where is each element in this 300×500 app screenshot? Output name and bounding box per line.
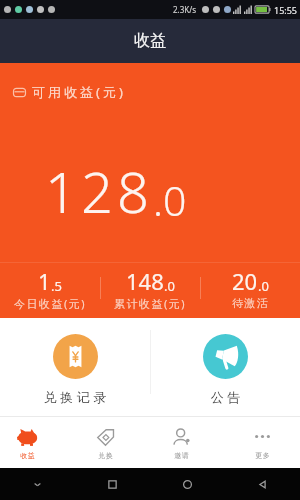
button[interactable]: 收益 [0, 417, 54, 468]
other: Home [181, 478, 194, 491]
other: Back [256, 478, 269, 491]
staticText: 可用收益(元) [32, 83, 126, 101]
button[interactable]: 20 [201, 263, 300, 318]
staticText: 2.3K/s [173, 4, 197, 15]
staticText: .0 [258, 277, 269, 295]
button[interactable]: 148 [101, 263, 200, 318]
staticText: .5 [51, 277, 62, 295]
staticText: .0 [153, 172, 187, 228]
staticText: 兑换 [98, 451, 113, 460]
staticText: .0 [164, 277, 175, 295]
button[interactable]: 兑换 [78, 417, 132, 468]
staticText: 148 [126, 266, 164, 296]
staticText: 更多 [255, 451, 270, 460]
staticText: 公告 [209, 389, 242, 405]
staticText: 128 [45, 153, 153, 229]
staticText: 收益 [134, 31, 166, 51]
staticText: 累计收益(元) [114, 296, 187, 311]
button[interactable]: 更多 [235, 417, 289, 468]
staticText: 今日收益(元) [14, 296, 87, 311]
staticText: 待激活 [232, 296, 270, 310]
button[interactable]: 邀请 [154, 417, 208, 468]
other: Recents [106, 478, 119, 491]
staticText: 15:55 [274, 4, 298, 16]
staticText: 邀请 [174, 451, 189, 460]
staticText: 1 [38, 266, 51, 296]
staticText: 兑换记录 [42, 389, 108, 405]
other: Hide keyboard [31, 478, 44, 491]
staticText: 20 [232, 266, 258, 296]
button[interactable]: 公告 [150, 318, 300, 416]
button[interactable]: 兑换记录 [0, 318, 150, 416]
staticText: 收益 [20, 451, 35, 460]
button[interactable]: 1 [0, 263, 100, 318]
